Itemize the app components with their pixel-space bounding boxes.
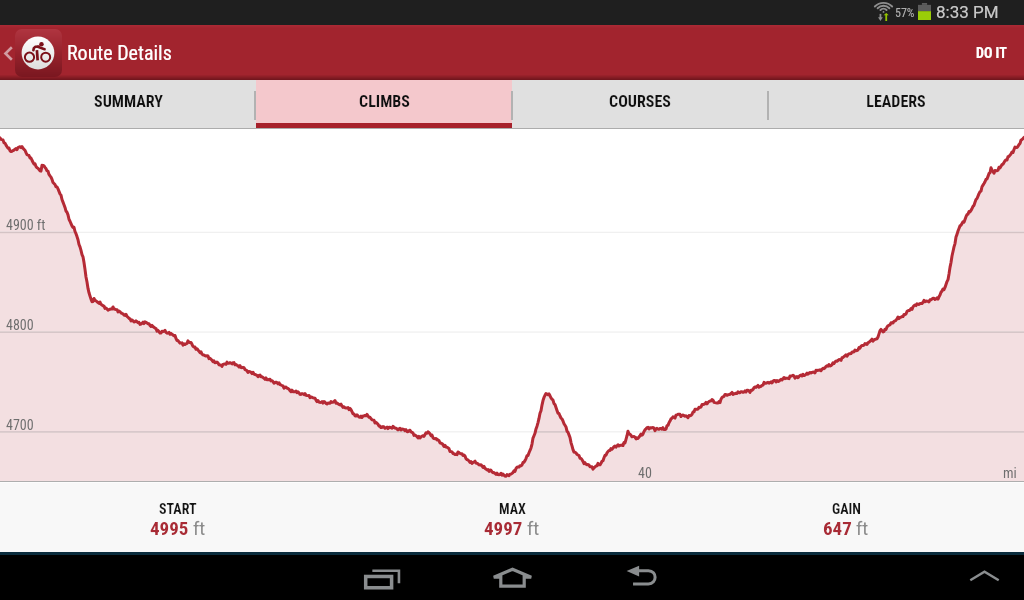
button[interactable]: MAX [345, 483, 679, 552]
staticText: 4997 [484, 517, 523, 539]
button[interactable]: DO IT [959, 25, 1024, 80]
staticText: COURSES [609, 92, 671, 111]
staticText: SUMMARY [94, 92, 163, 111]
staticText: LEADERS [866, 92, 926, 111]
staticText: mi [1003, 465, 1017, 481]
staticText: MAX [499, 501, 526, 517]
button[interactable]: Home [479, 555, 546, 600]
staticText: CLIMBS [359, 92, 410, 111]
staticText: Route Details [67, 41, 172, 64]
staticText: 57% [895, 6, 915, 20]
staticText: 8:33 PM [936, 2, 999, 22]
button[interactable]: CLIMBS [256, 80, 512, 129]
button[interactable]: Expand [956, 555, 1013, 600]
button[interactable]: Back [612, 555, 672, 600]
button[interactable]: Recent apps [351, 555, 414, 600]
staticText: 4995 [150, 517, 189, 539]
staticText: ft [527, 518, 540, 539]
staticText: ft [856, 518, 869, 539]
staticText: 40 [638, 465, 652, 481]
staticText: 4900 ft [6, 217, 46, 233]
button[interactable]: START [10, 483, 345, 552]
staticText: DO IT [976, 45, 1007, 61]
button[interactable]: LEADERS [768, 80, 1024, 129]
button[interactable]: GAIN [679, 483, 1013, 552]
staticText: START [159, 501, 197, 517]
staticText: GAIN [832, 501, 861, 517]
staticText: 647 [823, 517, 852, 539]
staticText: 4800 [6, 317, 34, 333]
staticText: ft [193, 518, 206, 539]
staticText: 4700 [6, 417, 34, 433]
button[interactable]: Back [0, 29, 62, 77]
button[interactable]: SUMMARY [0, 80, 256, 129]
button[interactable]: COURSES [512, 80, 768, 129]
